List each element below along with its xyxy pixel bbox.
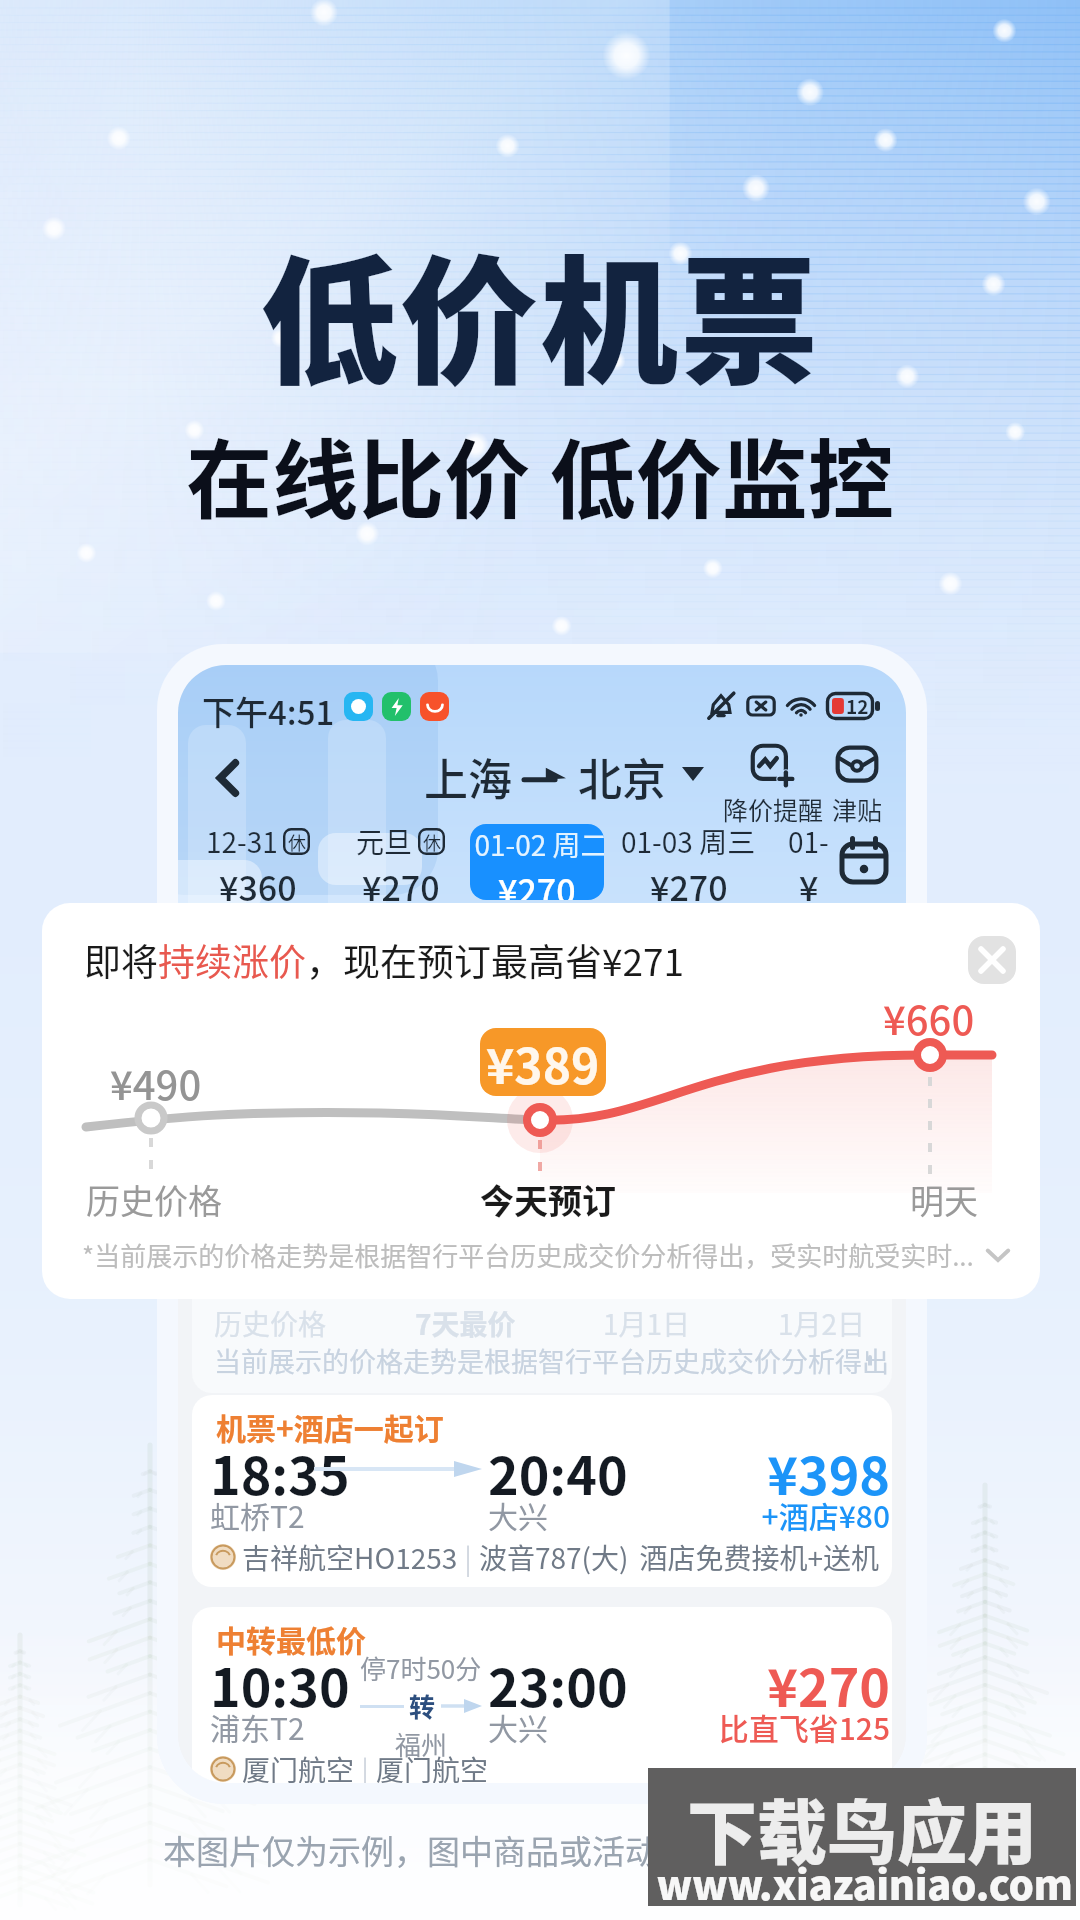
staticText: 12-31 (206, 821, 278, 862)
staticText: 厦门航空 (242, 1749, 355, 1783)
staticText: 浦东T2 (210, 1705, 305, 1747)
staticText: 历史价格 (214, 1303, 327, 1344)
button[interactable]: 津贴 (826, 743, 888, 827)
staticText: 01-03 周三 (621, 821, 756, 862)
staticText: ¥ (799, 862, 819, 903)
staticText: 降价提醒 (723, 791, 824, 827)
staticText: 休 (423, 829, 441, 855)
staticText: 大兴 (488, 1705, 548, 1747)
staticText: 津贴 (832, 791, 883, 827)
staticText: 持续涨价 (158, 933, 306, 987)
staticText: 01-02 周二 (474, 824, 600, 865)
button[interactable]: 机票+酒店一起订 (192, 1395, 892, 1587)
button[interactable]: Calendar (826, 823, 902, 899)
staticText: 上海 (424, 745, 512, 803)
staticText: 下午4:51 (202, 687, 335, 725)
button[interactable]: Close (968, 936, 1016, 984)
staticText: ¥270 (650, 862, 728, 903)
staticText: 今天预订 (480, 1175, 616, 1224)
staticText: 低价机票 (0, 212, 1080, 412)
staticText: 吉祥航空HO1253 (242, 1537, 458, 1577)
staticText: 中转最低价 (216, 1617, 366, 1660)
staticText: 23:00 (488, 1647, 628, 1713)
staticText: ¥270 (498, 865, 576, 900)
staticText: 12 (846, 692, 869, 720)
staticText: 酒店免费接机+送机 (639, 1537, 872, 1577)
staticText: 历史价格 (86, 1175, 222, 1224)
staticText: 7天最价 (415, 1303, 516, 1344)
staticText: 1月1日 (603, 1303, 691, 1344)
staticText: ¥360 (219, 862, 297, 903)
button[interactable]: 元旦 (330, 821, 470, 903)
staticText: 北京 (578, 745, 666, 803)
button[interactable]: 01-02 周二 (470, 824, 604, 900)
staticText: ¥398 (192, 1435, 890, 1501)
staticText: ¥270 (362, 862, 440, 903)
staticText: 在线比价 低价监控 (0, 412, 1080, 537)
staticText: 厦门航空 (376, 1749, 489, 1783)
staticText: 转 (409, 1687, 436, 1725)
staticText: 当前展示的价格走势是根据智行平台历史成交价分析得出，受实时航 (214, 1341, 870, 1380)
staticText: ¥660 (883, 989, 975, 1047)
staticText: | (355, 1749, 376, 1783)
staticText: 福州 (395, 1725, 448, 1763)
staticText: +酒店¥80 (192, 1493, 890, 1535)
staticText: ¥270 (192, 1647, 890, 1713)
staticText: *当前展示的价格走势是根据智行平台历史成交价分析得出，受实时航受实时... (82, 1236, 974, 1274)
staticText: 01- (788, 821, 829, 862)
staticText: 大兴 (488, 1493, 548, 1535)
staticText: | (458, 1537, 479, 1577)
button[interactable]: 01-03 周三 (606, 821, 770, 903)
staticText: 虹桥T2 (210, 1493, 305, 1535)
button[interactable]: 中转最低价 (192, 1607, 892, 1783)
staticText: ¥389 (486, 1028, 600, 1096)
button[interactable]: 12-31 (186, 821, 330, 903)
staticText: www.xiazainiao.com (656, 1854, 1068, 1912)
staticText: 停7时50分 (360, 1649, 482, 1687)
staticText: 下载鸟应用 (658, 1778, 1066, 1879)
staticText: 即将 (84, 933, 158, 987)
staticText: ，现在预订最高省¥271 (306, 933, 685, 987)
staticText: 机票+酒店一起订 (216, 1405, 444, 1448)
staticText: 明天 (910, 1175, 978, 1224)
staticText: 20:40 (488, 1435, 628, 1501)
staticText: 休 (288, 829, 306, 855)
staticText: ¥490 (110, 1054, 202, 1112)
staticText: 元旦 (356, 821, 413, 862)
staticText: 本图片仅为示例，图中商品或活动以App内公示为准 (0, 1826, 1080, 1874)
staticText: 波音787(大) (479, 1537, 629, 1577)
button[interactable]: Back (196, 745, 262, 811)
button[interactable]: 01- (770, 821, 846, 903)
staticText: 1月2日 (778, 1303, 866, 1344)
staticText: 10:30 (210, 1647, 350, 1713)
staticText: 比直飞省125 (192, 1705, 890, 1747)
staticText: 18:35 (210, 1435, 350, 1501)
button[interactable]: 上海 (424, 745, 704, 803)
button[interactable]: 降价提醒 (720, 743, 826, 827)
